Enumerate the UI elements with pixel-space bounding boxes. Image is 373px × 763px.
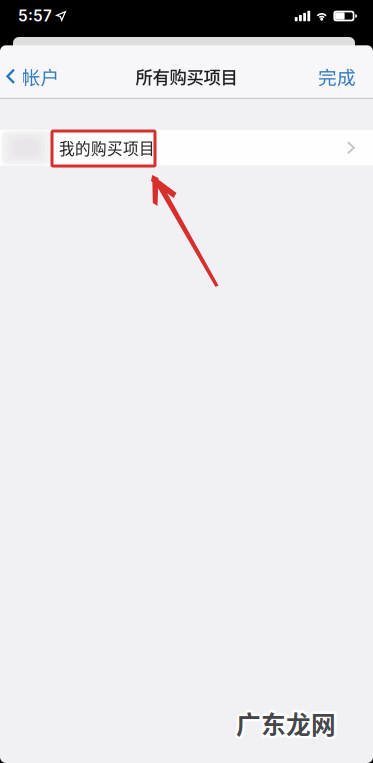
staticText: 广东龙网 bbox=[238, 707, 338, 743]
staticText: 广东龙网 bbox=[234, 706, 334, 742]
staticText: 我的购买项目 bbox=[59, 136, 155, 159]
staticText: 帐户 bbox=[21, 63, 59, 90]
staticText: 完成 bbox=[318, 63, 356, 90]
button[interactable]: 我的购买项目 bbox=[0, 130, 373, 165]
staticText: 广东龙网 bbox=[236, 703, 336, 739]
staticText: 广东龙网 bbox=[234, 705, 334, 741]
staticText: 5:57 bbox=[18, 7, 52, 25]
staticText: 广东龙网 bbox=[236, 708, 336, 743]
staticText: 广东龙网 bbox=[237, 703, 337, 739]
staticText: 广东龙网 bbox=[238, 704, 338, 740]
staticText: 广东龙网 bbox=[234, 704, 334, 740]
staticText: 广东龙网 bbox=[234, 703, 334, 739]
staticText: 广东龙网 bbox=[235, 707, 335, 743]
staticText: 广东龙网 bbox=[237, 707, 337, 743]
staticText: 广东龙网 bbox=[236, 705, 336, 741]
staticText: 广东龙网 bbox=[238, 706, 338, 742]
staticText: 广东龙网 bbox=[235, 703, 335, 739]
button[interactable]: 完成 bbox=[310, 54, 373, 98]
staticText: 所有购买项目 bbox=[135, 64, 237, 89]
staticText: 广东龙网 bbox=[234, 707, 334, 743]
button[interactable]: 帐户 bbox=[0, 54, 67, 98]
staticText: 广东龙网 bbox=[238, 705, 338, 741]
staticText: 广东龙网 bbox=[238, 703, 338, 739]
